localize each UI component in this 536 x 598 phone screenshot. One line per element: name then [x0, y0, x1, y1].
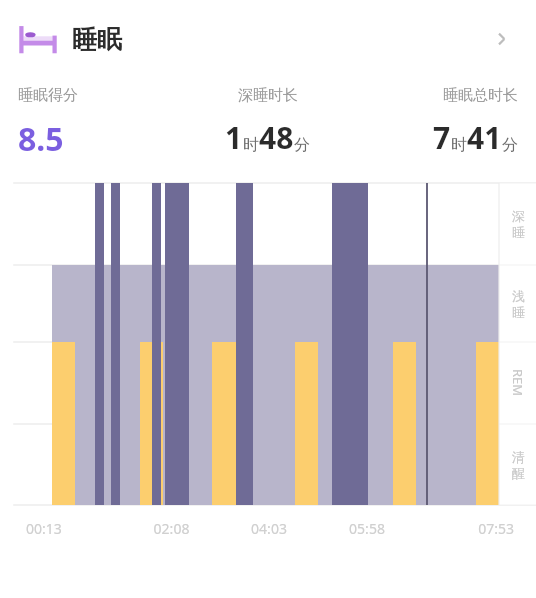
staticText: 1 — [225, 117, 243, 158]
staticText: 07:53 — [416, 519, 514, 538]
staticText: 深 — [512, 208, 525, 224]
button[interactable]: 睡眠 — [0, 22, 536, 56]
staticText: 48 — [259, 117, 294, 158]
staticText: REM — [509, 369, 527, 397]
button[interactable]: 深 — [0, 183, 536, 505]
staticText: 深睡时长 — [238, 86, 298, 105]
staticText: 分 — [294, 135, 310, 155]
staticText: 04:03 — [220, 519, 318, 538]
staticText: 睡 — [512, 304, 525, 320]
staticText: 7 — [433, 117, 451, 158]
staticText: 时 — [451, 135, 467, 155]
button[interactable]: 睡眠得分 — [0, 86, 178, 161]
button[interactable]: More sleep details — [484, 22, 518, 56]
button[interactable]: 睡眠总时长 — [357, 86, 536, 158]
staticText: 睡 — [512, 224, 525, 240]
staticText: 分 — [502, 135, 518, 155]
staticText: 醒 — [512, 465, 525, 481]
staticText: 睡眠 — [72, 24, 122, 55]
staticText: 8.5 — [18, 117, 64, 161]
staticText: 睡眠得分 — [18, 86, 78, 105]
button[interactable]: 深睡时长 — [178, 86, 357, 158]
staticText: 02:08 — [123, 519, 220, 538]
staticText: 时 — [243, 135, 259, 155]
staticText: 00:13 — [26, 519, 123, 538]
staticText: 清 — [512, 449, 525, 465]
staticText: 浅 — [512, 288, 525, 304]
staticText: 05:58 — [318, 519, 416, 538]
staticText: 41 — [467, 117, 502, 158]
staticText: 睡眠总时长 — [443, 86, 518, 105]
